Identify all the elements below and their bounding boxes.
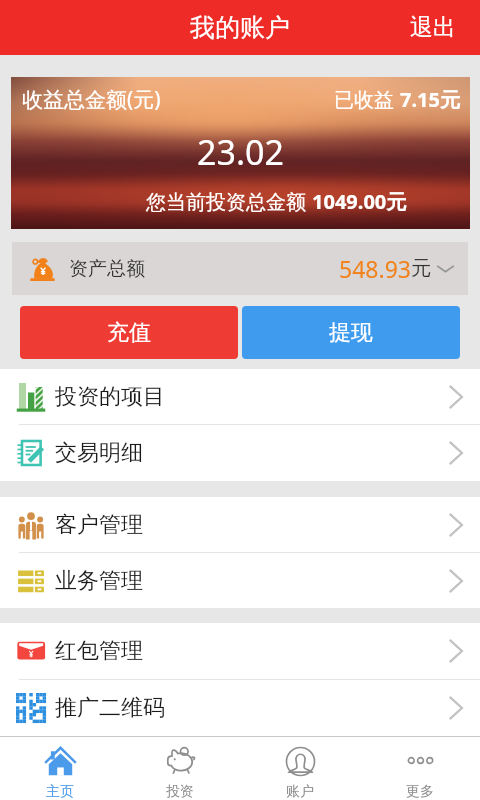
staticText: 23.02 (197, 129, 284, 175)
staticText: 更多 (406, 783, 434, 800)
button[interactable]: 投资 (120, 736, 240, 800)
button[interactable]: 账户 (240, 736, 360, 800)
staticText: 您当前投资总金额 (146, 188, 312, 215)
staticText: 元 (411, 256, 431, 281)
button[interactable]: 红包管理 (0, 623, 480, 679)
staticText: 投资的项目 (55, 383, 165, 411)
staticText: 红包管理 (55, 637, 143, 665)
staticText: 我的账户 (190, 12, 290, 43)
button[interactable]: 交易明细 (0, 425, 480, 480)
staticText: 主页 (46, 783, 74, 800)
button[interactable]: 退出 (394, 3, 480, 52)
staticText: 1049.00元 (312, 188, 407, 215)
button[interactable]: 主页 (0, 736, 120, 800)
staticText: 客户管理 (55, 511, 143, 539)
button[interactable]: 提现 (242, 306, 460, 359)
button[interactable]: 投资的项目 (0, 369, 480, 424)
staticText: 7.15元 (400, 86, 460, 113)
staticText: 账户 (286, 783, 314, 800)
button[interactable]: 更多 (360, 736, 480, 800)
staticText: 548.93 (339, 253, 411, 284)
staticText: 交易明细 (55, 439, 143, 467)
staticText: 资产总额 (69, 257, 145, 281)
staticText: 提现 (329, 319, 373, 347)
staticText: 退出 (410, 13, 456, 42)
staticText: 业务管理 (55, 567, 143, 595)
button[interactable]: 客户管理 (0, 497, 480, 552)
staticText: 已收益 (334, 86, 400, 113)
button[interactable]: 推广二维码 (0, 680, 480, 736)
staticText: 推广二维码 (55, 694, 165, 722)
staticText: 投资 (166, 783, 194, 800)
button[interactable]: 业务管理 (0, 553, 480, 608)
button[interactable]: 资产总额 (12, 242, 468, 295)
staticText: 充值 (107, 319, 151, 347)
staticText: 收益总金额(元) (22, 85, 161, 114)
button[interactable]: 充值 (20, 306, 238, 359)
